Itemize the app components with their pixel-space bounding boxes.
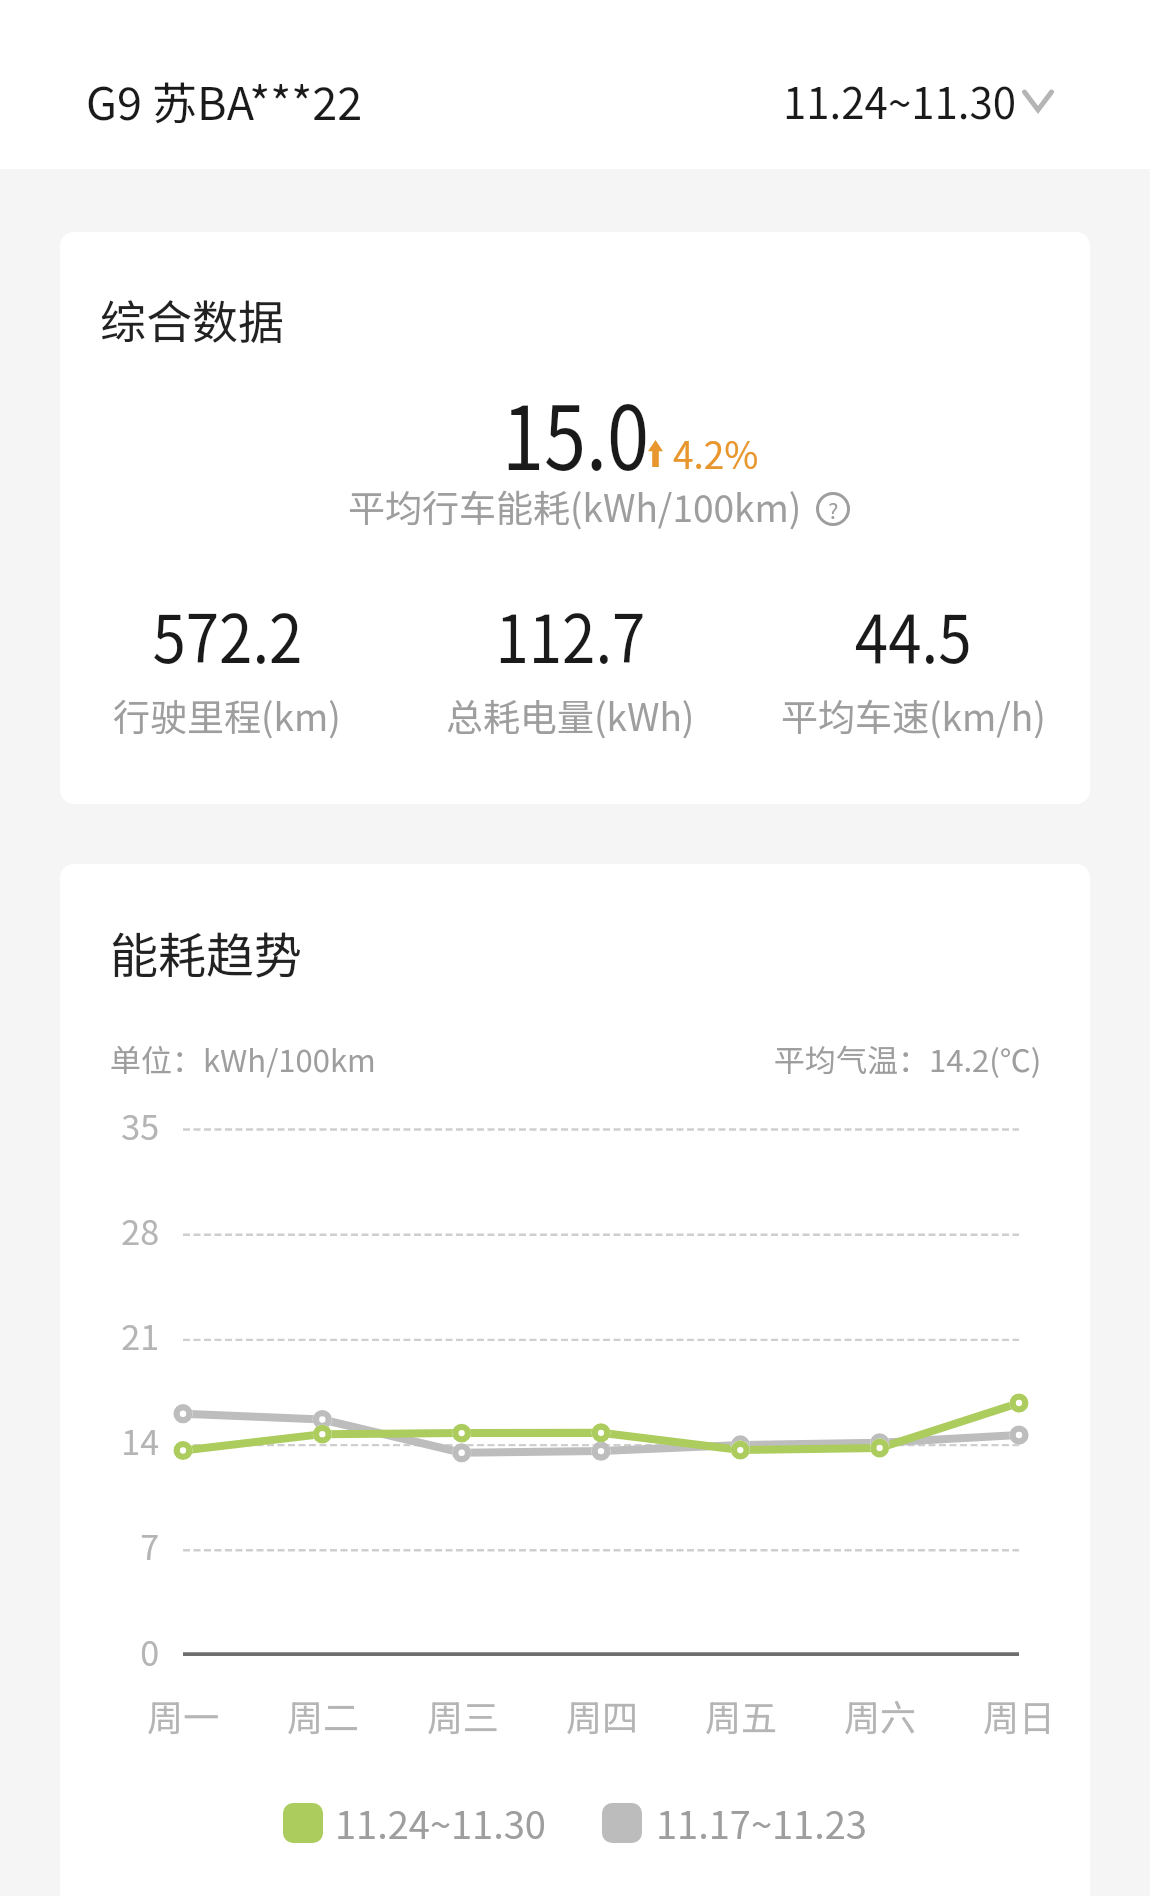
staticText: 行驶里程(km) <box>113 688 341 742</box>
staticText: 周日 <box>983 1689 1056 1741</box>
staticText: 21 <box>60 1311 159 1360</box>
staticText: 4.2% <box>673 426 759 480</box>
button[interactable]: 11.24~11.30 <box>783 70 1054 131</box>
staticText: 总耗电量(kWh) <box>446 688 695 742</box>
staticText: 能耗趋势 <box>110 917 303 987</box>
staticText: 单位：kWh/100km <box>110 1036 376 1081</box>
staticText: 44.5 <box>855 586 972 682</box>
staticText: G9 苏BA***22 <box>86 68 363 133</box>
staticText: 周三 <box>427 1689 500 1741</box>
staticText: 周一 <box>147 1689 220 1741</box>
staticText: 周四 <box>566 1689 639 1741</box>
staticText: 7 <box>60 1521 159 1570</box>
staticText: ? <box>828 493 839 525</box>
staticText: 28 <box>60 1206 159 1255</box>
staticText: 0 <box>60 1627 159 1676</box>
staticText: 11.24~11.30 <box>335 1795 546 1850</box>
button[interactable]: 说明 <box>816 492 850 526</box>
staticText: 11.17~11.23 <box>656 1795 867 1850</box>
staticText: 11.24~11.30 <box>783 70 1017 131</box>
staticText: 112.7 <box>495 586 646 682</box>
staticText: 572.2 <box>152 586 303 682</box>
staticText: 14 <box>60 1416 159 1465</box>
staticText: 15.0 <box>502 368 649 495</box>
staticText: 平均行车能耗(kWh/100km) <box>348 479 802 533</box>
staticText: 35 <box>60 1101 159 1150</box>
staticText: 平均气温：14.2(℃) <box>774 1036 1042 1081</box>
staticText: 周二 <box>287 1689 360 1741</box>
staticText: 周六 <box>844 1689 917 1741</box>
staticText: 综合数据 <box>100 286 284 353</box>
staticText: 周五 <box>705 1689 778 1741</box>
staticText: 平均车速(km/h) <box>781 688 1046 742</box>
